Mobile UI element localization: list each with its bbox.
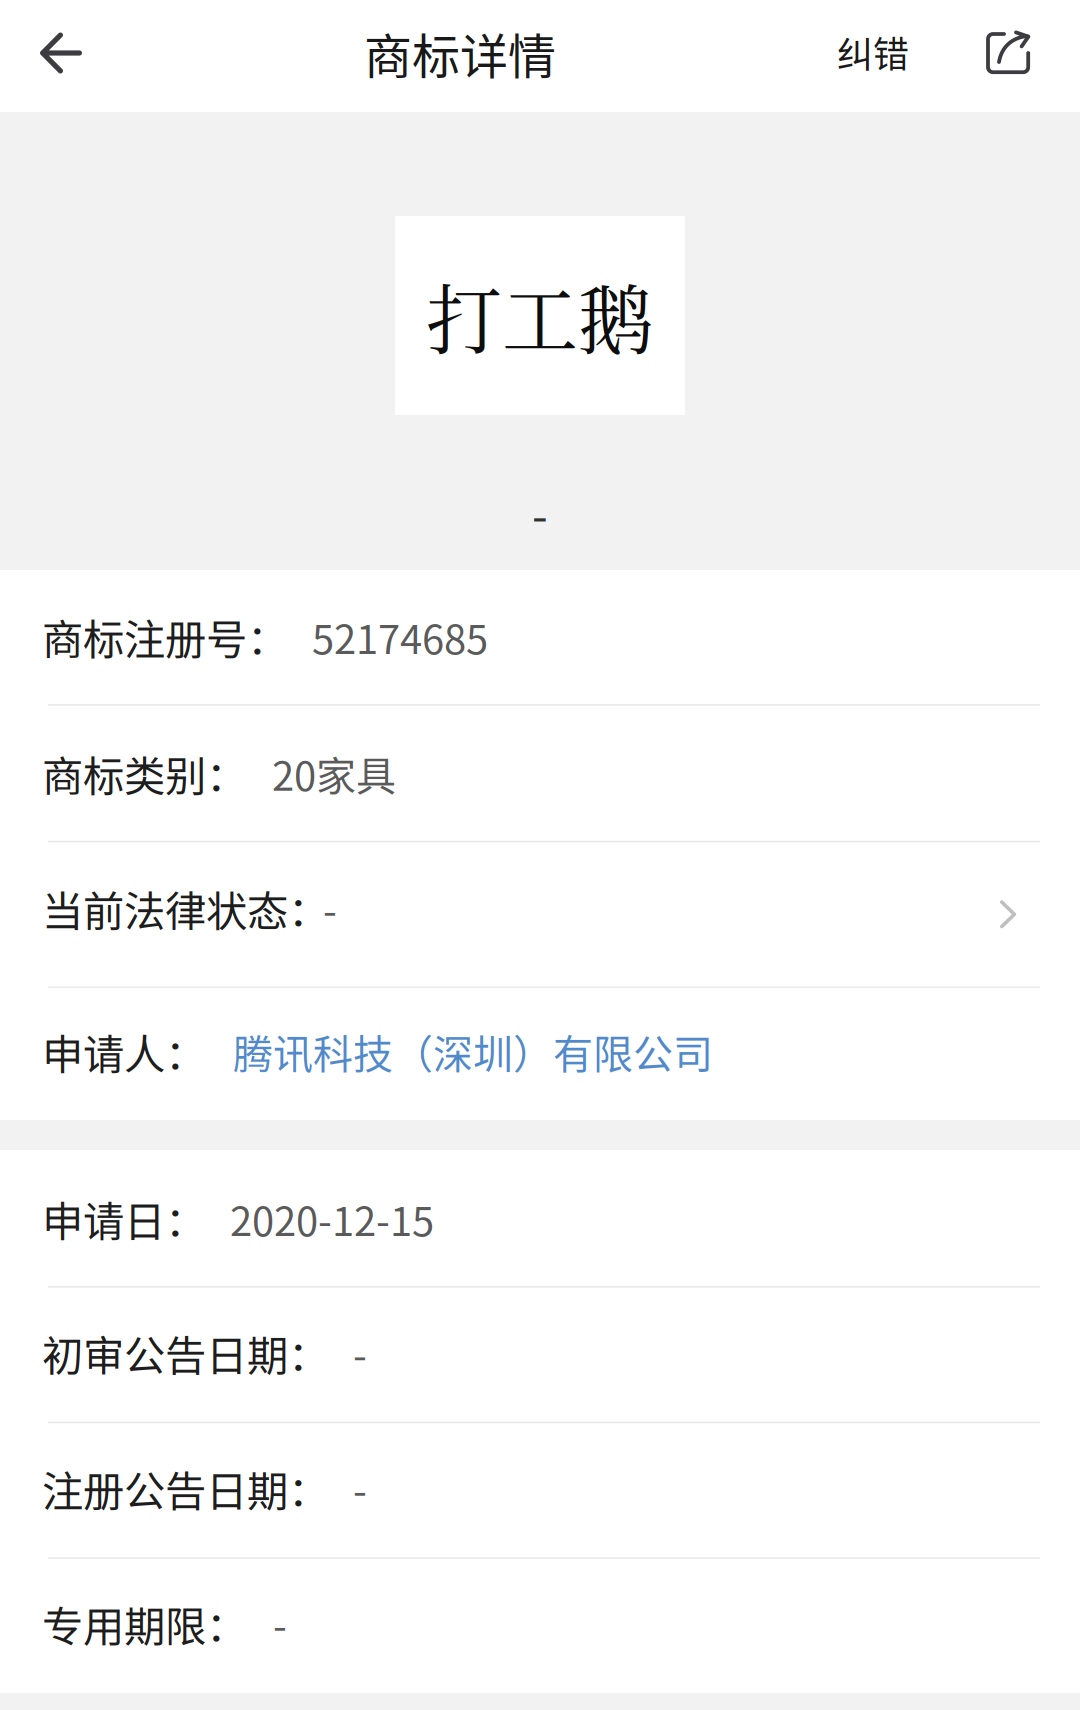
- button[interactable]: 当前法律状态：: [0, 842, 1080, 986]
- staticText: -: [353, 1324, 367, 1382]
- staticText: 注册公告日期：: [42, 1458, 329, 1518]
- staticText: 当前法律状态：: [42, 878, 329, 938]
- staticText: 腾讯科技（深圳）有限公司: [233, 1022, 713, 1080]
- button[interactable]: 申请人：: [0, 988, 1080, 1121]
- staticText: 申请日：: [42, 1189, 206, 1249]
- button[interactable]: Back: [0, 0, 122, 112]
- staticText: 纠错: [837, 26, 909, 78]
- staticText: 商标类别：: [42, 743, 247, 803]
- button[interactable]: 商标注册号：: [0, 569, 1080, 704]
- staticText: 商标详情: [364, 18, 556, 88]
- staticText: 商标注册号：: [42, 607, 288, 667]
- staticText: 20家具: [272, 744, 396, 802]
- staticText: 52174685: [312, 608, 488, 665]
- staticText: 专用期限：: [42, 1593, 247, 1653]
- button[interactable]: 专用期限：: [0, 1559, 1080, 1692]
- button[interactable]: 注册公告日期：: [0, 1423, 1080, 1557]
- staticText: 打工鹅: [426, 261, 654, 370]
- button[interactable]: 纠错: [798, 0, 948, 112]
- staticText: -: [273, 1594, 287, 1652]
- button[interactable]: Share: [948, 0, 1030, 112]
- button[interactable]: 初审公告日期：: [0, 1288, 1080, 1422]
- staticText: -: [532, 480, 548, 546]
- button[interactable]: 商标类别：: [0, 706, 1080, 841]
- staticText: -: [353, 1459, 367, 1517]
- staticText: 申请人：: [42, 1021, 206, 1081]
- staticText: -: [323, 879, 337, 937]
- staticText: 2020-12-15: [230, 1190, 434, 1247]
- staticText: 初审公告日期：: [42, 1323, 329, 1383]
- button[interactable]: 申请日：: [0, 1151, 1080, 1286]
